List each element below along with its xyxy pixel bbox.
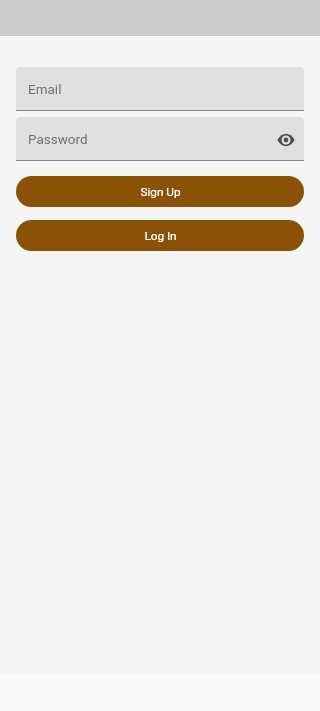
staticText: Sign Up xyxy=(140,185,181,199)
button[interactable]: Show password xyxy=(273,126,299,152)
button[interactable]: Email xyxy=(16,67,304,110)
button[interactable]: Password xyxy=(16,117,304,160)
button[interactable]: Log In xyxy=(16,220,304,251)
button[interactable]: Sign Up xyxy=(16,176,304,207)
staticText: Email xyxy=(28,81,62,97)
staticText: Log In xyxy=(144,229,177,243)
staticText: Password xyxy=(28,131,88,147)
